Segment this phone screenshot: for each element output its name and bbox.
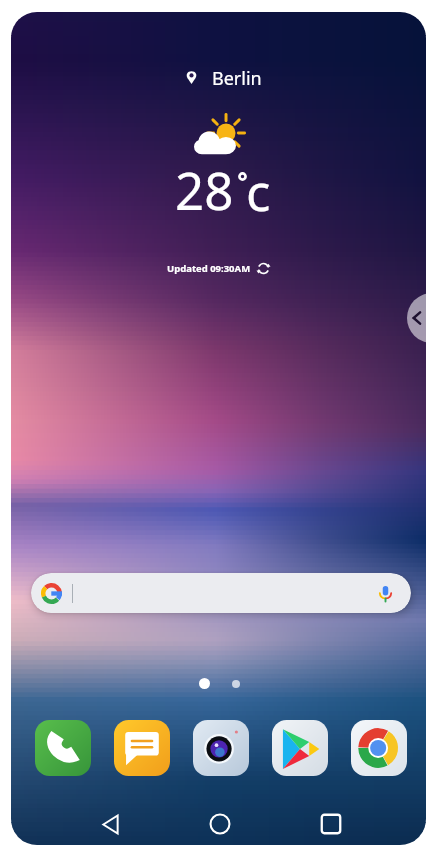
staticText: 28 bbox=[175, 155, 234, 224]
staticText: Updated 09:30AM bbox=[167, 262, 251, 275]
button[interactable]: Open panel bbox=[407, 293, 426, 343]
button[interactable]: Play Store bbox=[272, 720, 328, 776]
button[interactable] bbox=[31, 573, 411, 613]
button[interactable]: Camera bbox=[193, 720, 249, 776]
button[interactable]: Messages bbox=[114, 720, 170, 776]
staticText: c bbox=[246, 156, 271, 225]
staticText: Berlin bbox=[212, 66, 262, 88]
button[interactable]: Back bbox=[88, 802, 132, 845]
button[interactable]: Updated 09:30AM bbox=[167, 257, 271, 279]
button[interactable]: Berlin bbox=[185, 66, 262, 88]
button[interactable]: Chrome bbox=[351, 720, 407, 776]
button[interactable]: Phone bbox=[35, 720, 91, 776]
button[interactable]: Recents bbox=[309, 802, 353, 845]
button[interactable]: Home bbox=[198, 802, 242, 845]
